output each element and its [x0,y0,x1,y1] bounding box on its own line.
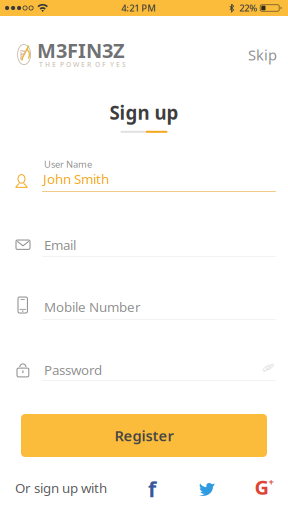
staticText: Email [44,236,76,254]
button[interactable]: Sign up with Google [252,475,276,499]
staticText: T H E P O W E R O F Y E S [39,60,126,69]
button[interactable]: Email [0,236,288,268]
staticText: + [268,476,273,488]
button[interactable]: Mefinez home [13,39,135,71]
staticText: Or sign up with [15,479,107,497]
staticText: Mobile Number [44,298,141,316]
staticText: Register [114,426,173,445]
button[interactable]: Register [21,414,267,457]
staticText: G [254,474,268,500]
staticText: 4:21 PM [121,2,156,14]
staticText: Sign up [109,100,178,125]
button[interactable]: Skip [238,37,287,72]
button[interactable]: Sign up with Facebook [140,477,164,501]
staticText: User Name [44,158,92,170]
staticText: Skip [248,45,277,64]
staticText: John Smith [43,170,109,188]
staticText: M3FIN3Z [37,37,125,64]
button[interactable]: Password [0,360,288,392]
staticText: Password [44,361,102,379]
button[interactable]: Mobile Number [0,296,288,328]
staticText: 22% [239,2,257,14]
staticText: f [148,475,156,503]
button[interactable]: Sign up with Twitter [195,477,219,501]
button[interactable]: User Name [0,159,288,203]
